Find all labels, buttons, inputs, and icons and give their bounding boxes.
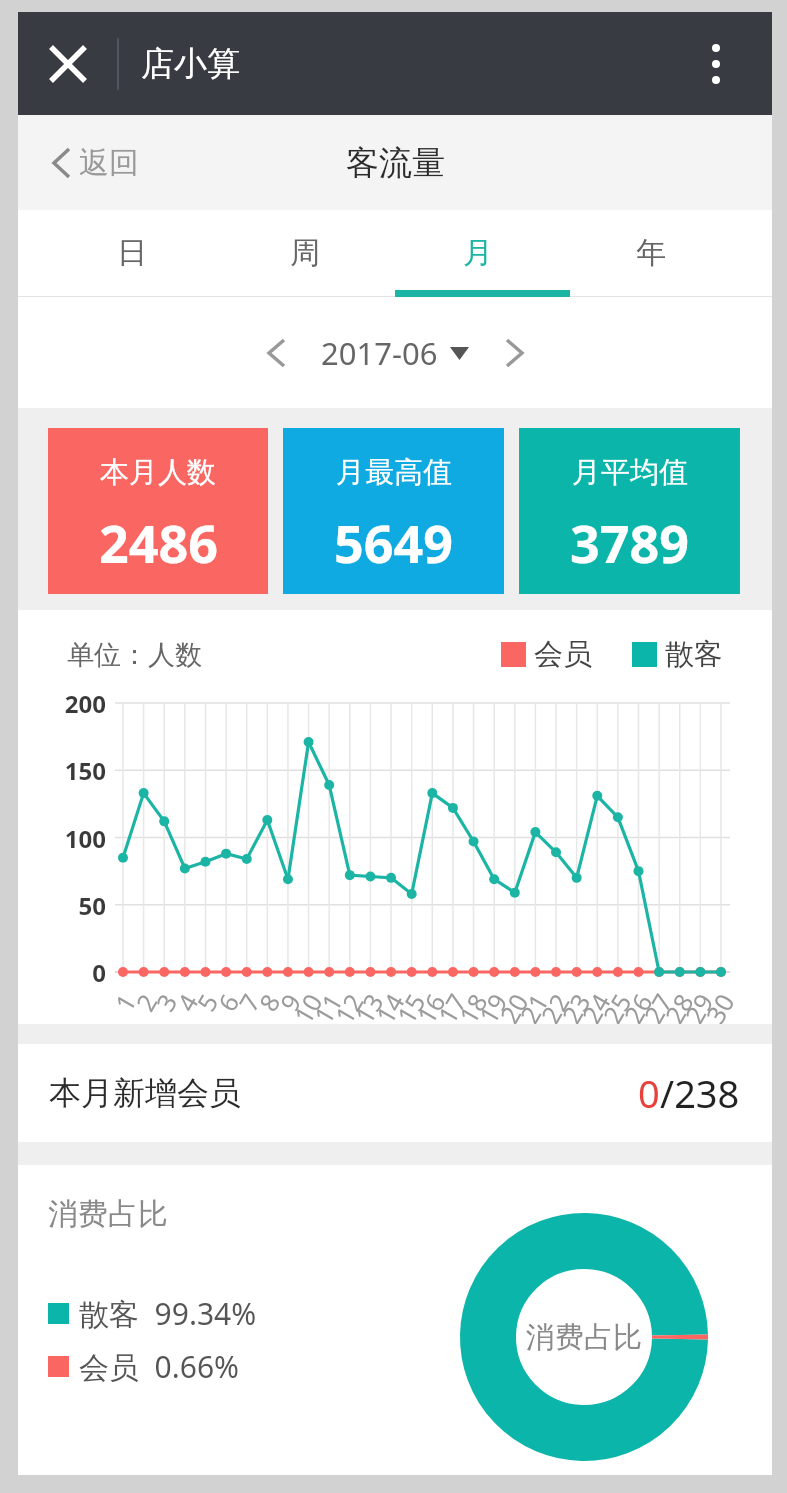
staticText: 单位：人数	[67, 638, 202, 672]
staticText: 月平均值	[572, 454, 688, 491]
button[interactable]: 2017-06	[321, 332, 469, 374]
staticText: 本月人数	[100, 454, 216, 491]
staticText: 18	[451, 987, 495, 1029]
staticText: 0	[92, 956, 106, 989]
staticText: 11	[306, 987, 350, 1029]
staticText: 2486	[99, 507, 218, 578]
staticText: 14	[368, 987, 412, 1029]
staticText: 散客 99.34%	[79, 1293, 257, 1334]
staticText: 23	[554, 987, 598, 1029]
staticText: 30	[698, 987, 742, 1029]
staticText: 月	[463, 234, 493, 272]
button[interactable]	[255, 333, 295, 373]
button[interactable]: 会员 0.66%	[48, 1346, 240, 1387]
button[interactable]: 月	[391, 210, 564, 290]
staticText: 4	[169, 987, 206, 1017]
button[interactable]: 本月人数	[48, 428, 268, 594]
button[interactable]: 月最高值	[283, 428, 504, 594]
button[interactable]: 本月新增会员	[18, 1044, 772, 1142]
staticText: 2	[128, 987, 165, 1017]
staticText: 24	[574, 987, 618, 1029]
button[interactable]	[34, 30, 102, 98]
staticText: 50	[78, 889, 106, 922]
staticText: 21	[512, 987, 556, 1029]
button[interactable]: 年	[564, 210, 737, 290]
button[interactable]: 周	[218, 210, 391, 290]
staticText: 2017-06	[321, 332, 438, 374]
staticText: 0	[638, 1067, 660, 1119]
staticText: 25	[595, 987, 639, 1029]
staticText: 20	[492, 987, 536, 1029]
staticText: 本月新增会员	[49, 1073, 241, 1113]
staticText: 22	[533, 987, 577, 1029]
button[interactable]	[495, 333, 535, 373]
staticText: 消费占比	[48, 1195, 168, 1233]
button[interactable]: 散客 99.34%	[48, 1293, 257, 1334]
staticText: 26	[616, 987, 660, 1029]
button[interactable]: 返回	[52, 144, 139, 182]
staticText: 13	[347, 987, 391, 1029]
staticText: 7	[231, 987, 268, 1017]
staticText: 店小算	[141, 43, 240, 85]
staticText: /238	[660, 1067, 740, 1119]
staticText: 16	[409, 987, 453, 1029]
staticText: 28	[657, 987, 701, 1029]
staticText: 周	[290, 234, 320, 272]
staticText: 12	[327, 987, 371, 1029]
staticText: 27	[636, 987, 680, 1029]
staticText: 10	[286, 987, 330, 1029]
staticText: 15	[389, 987, 433, 1029]
staticText: 8	[251, 987, 288, 1017]
staticText: 日	[117, 234, 147, 272]
staticText: 客流量	[346, 142, 445, 184]
staticText: 消费占比	[526, 1319, 642, 1356]
button[interactable]: 日	[45, 210, 218, 290]
staticText: 年	[636, 234, 666, 272]
staticText: 200	[64, 687, 106, 720]
staticText: 1	[107, 987, 144, 1017]
staticText: 会员	[534, 636, 592, 673]
staticText: 3	[148, 987, 185, 1017]
button[interactable]	[688, 36, 744, 92]
button[interactable]: 会员	[501, 636, 723, 673]
staticText: 19	[471, 987, 515, 1029]
staticText: 5	[189, 987, 226, 1017]
staticText: 3789	[570, 507, 689, 578]
staticText: 9	[272, 987, 309, 1017]
staticText: 5649	[334, 507, 453, 578]
staticText: 月最高值	[336, 454, 452, 491]
staticText: 29	[677, 987, 721, 1029]
staticText: 150	[64, 754, 106, 787]
staticText: 100	[64, 822, 106, 855]
staticText: 6	[210, 987, 247, 1017]
staticText: 返回	[79, 144, 139, 182]
staticText: 17	[430, 987, 474, 1029]
button[interactable]: 月平均值	[519, 428, 740, 594]
staticText: 散客	[665, 636, 723, 673]
staticText: 会员 0.66%	[79, 1346, 240, 1387]
